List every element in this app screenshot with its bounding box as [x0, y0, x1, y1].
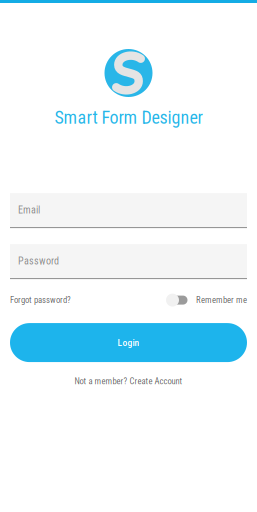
button[interactable]: Forgot password? [10, 293, 71, 307]
staticText: Forgot password? [10, 295, 71, 305]
staticText: Email [18, 204, 40, 216]
button[interactable]: Not a member? Create Account [74, 376, 182, 386]
staticText: Login [117, 337, 139, 348]
staticText: Not a member? Create Account [74, 376, 182, 386]
staticText: Remember me [196, 295, 247, 305]
staticText: Smart Form Designer [54, 107, 202, 128]
button[interactable]: Remember me [166, 294, 247, 307]
staticText: Password [18, 255, 59, 267]
button[interactable]: Login [10, 323, 247, 362]
